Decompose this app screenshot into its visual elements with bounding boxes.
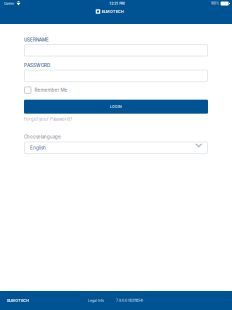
staticText: PASSWORD (24, 63, 50, 68)
button[interactable]: Forgot your Password? (24, 117, 72, 122)
button[interactable]: English (24, 141, 208, 154)
button[interactable]: Remember Me (24, 86, 67, 94)
staticText: Carrier (4, 2, 14, 5)
staticText: Legal Info (88, 298, 104, 303)
staticText: Remember Me (34, 87, 67, 93)
staticText: ELMOTECH (102, 9, 124, 14)
staticText: USERNAME (24, 37, 49, 42)
button[interactable]: LOGIN (24, 100, 208, 114)
staticText: Forgot your Password? (24, 117, 72, 122)
button[interactable]: Legal Info (88, 298, 104, 303)
staticText: Choose language: (24, 134, 61, 139)
staticText: 7.9.0.0 (10311854) (116, 298, 143, 303)
staticText: ELMOTECH (7, 298, 29, 303)
staticText: LOGIN (110, 105, 122, 109)
staticText: 100% (211, 2, 219, 5)
staticText: 12:21 PM (109, 1, 124, 6)
staticText: English (30, 145, 46, 151)
